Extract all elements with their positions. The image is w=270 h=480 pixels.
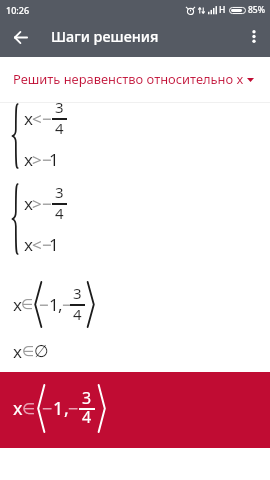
staticText: x — [24, 107, 33, 130]
staticText: > — [32, 148, 42, 171]
staticText: 4 — [55, 118, 64, 138]
staticText: x — [13, 396, 23, 421]
staticText: 4 — [82, 406, 92, 428]
staticText: 3 — [82, 387, 92, 409]
staticText: , — [64, 396, 69, 421]
staticText: x — [24, 192, 33, 215]
staticText: 3 — [73, 283, 82, 303]
staticText: > — [32, 192, 42, 215]
staticText: ∈ — [22, 400, 36, 417]
button[interactable]: More options — [237, 19, 270, 53]
staticText: Шаги решения — [51, 27, 159, 47]
staticText: 1 — [49, 293, 59, 316]
staticText: − — [62, 293, 72, 316]
staticText: 1 — [53, 396, 64, 421]
staticText: − — [68, 396, 79, 421]
staticText: x — [24, 148, 33, 171]
staticText: 4 — [55, 203, 64, 223]
staticText: H — [219, 4, 226, 16]
staticText: x — [13, 293, 22, 316]
staticText: 3 — [55, 97, 64, 117]
staticText: x — [24, 233, 33, 256]
staticText: − — [42, 192, 52, 215]
button[interactable]: Решить неравенство относительно x — [0, 57, 270, 102]
staticText: ∈ — [21, 296, 34, 312]
staticText: 3 — [55, 182, 64, 202]
staticText: , — [58, 293, 63, 316]
staticText: 85% — [248, 4, 265, 16]
staticText: − — [42, 107, 52, 130]
staticText: 4 — [73, 304, 82, 324]
staticText: Решить неравенство относительно x — [13, 70, 244, 88]
staticText: − — [42, 148, 52, 171]
button[interactable]: Back — [4, 20, 38, 54]
staticText: ∈ — [22, 343, 35, 359]
staticText: < — [32, 233, 42, 256]
staticText: x — [13, 340, 22, 362]
staticText: − — [39, 293, 49, 316]
staticText: − — [42, 396, 53, 421]
staticText: 10:26 — [6, 4, 30, 16]
staticText: − — [42, 233, 52, 256]
staticText: ∅ — [34, 341, 49, 361]
staticText: 1 — [49, 233, 59, 256]
staticText: < — [32, 107, 42, 130]
staticText: 1 — [49, 148, 59, 171]
